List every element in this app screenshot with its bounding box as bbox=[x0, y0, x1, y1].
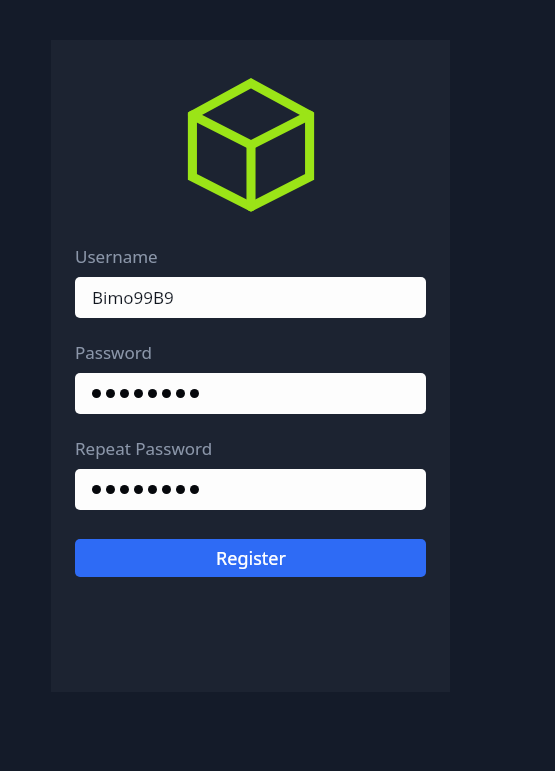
staticText: Password bbox=[75, 341, 152, 364]
staticText: Username bbox=[75, 245, 158, 268]
other: App logo bbox=[188, 80, 314, 210]
button[interactable]: Register bbox=[75, 539, 426, 577]
staticText: Bimo99B9 bbox=[92, 286, 174, 309]
button[interactable]: Bimo99B9 bbox=[75, 277, 426, 318]
staticText: Repeat Password bbox=[75, 437, 213, 460]
button[interactable] bbox=[75, 373, 426, 414]
staticText: Register bbox=[216, 546, 286, 571]
button[interactable] bbox=[75, 469, 426, 510]
